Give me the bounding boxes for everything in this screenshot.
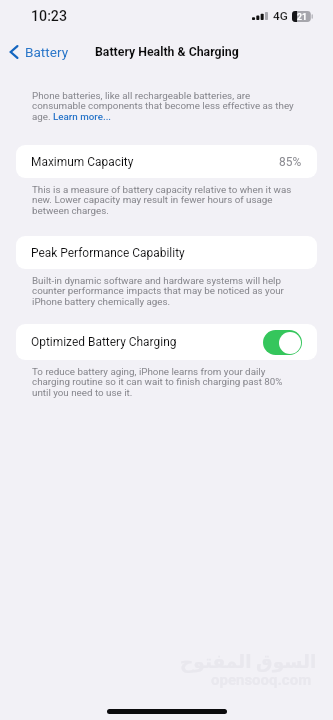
staticText: Peak Performance Capability (31, 246, 185, 260)
staticText: Maximum Capacity (31, 155, 134, 169)
staticText: 10:23 (31, 8, 67, 25)
staticText: Built-in dynamic software and hardware s… (32, 275, 300, 308)
staticText: السوق المفتوح (180, 651, 317, 673)
staticText: 4G (273, 9, 288, 23)
staticText: Battery (25, 44, 69, 60)
button[interactable]: Optimized Battery Charging toggle (263, 330, 302, 355)
staticText: Battery Health & Charging (95, 45, 239, 59)
button[interactable]: Optimized Battery Charging (16, 324, 317, 360)
button[interactable]: Peak Performance Capability (16, 236, 317, 269)
staticText: 21 (297, 12, 307, 22)
staticText: Phone batteries, like all rechargeable b… (32, 90, 300, 123)
button[interactable]: Maximum Capacity (16, 145, 317, 178)
staticText: To reduce battery aging, iPhone learns f… (32, 366, 300, 399)
staticText: 85% (279, 155, 302, 169)
staticText: This is a measure of battery capacity re… (32, 184, 300, 217)
staticText: opensooq.com (211, 671, 312, 689)
button[interactable]: Battery (9, 44, 69, 60)
staticText: Optimized Battery Charging (31, 335, 177, 349)
